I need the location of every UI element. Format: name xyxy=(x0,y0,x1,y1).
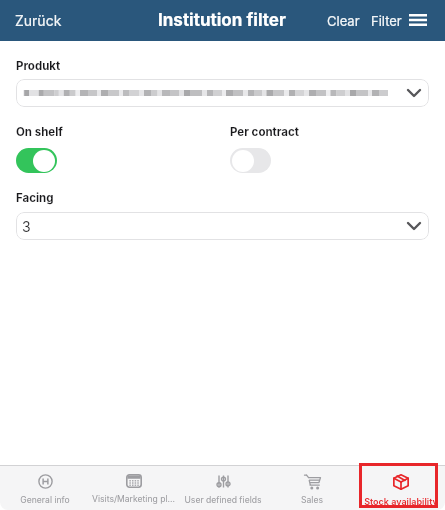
button[interactable]: Menu xyxy=(408,11,428,31)
button[interactable] xyxy=(16,79,429,107)
staticText: Facing xyxy=(16,191,54,205)
staticText: User defined fields xyxy=(184,495,262,505)
staticText: Visits/Marketing pl... xyxy=(92,494,175,504)
button[interactable]: Sales xyxy=(267,465,356,510)
staticText: 3 xyxy=(22,218,31,235)
button[interactable]: On xyxy=(16,148,57,173)
button[interactable]: Zurück xyxy=(0,4,74,37)
staticText: Produkt xyxy=(16,59,61,73)
staticText: On shelf xyxy=(16,125,63,139)
staticText: Per contract xyxy=(230,125,299,139)
staticText: Stock availability xyxy=(364,496,438,507)
button[interactable]: Stock availability xyxy=(356,465,445,510)
button[interactable]: Clear xyxy=(324,5,363,37)
staticText: Zurück xyxy=(15,12,62,29)
staticText: General info xyxy=(20,495,70,505)
button[interactable]: Off xyxy=(230,148,271,173)
staticText: Sales xyxy=(301,495,323,505)
staticText: Clear xyxy=(327,13,360,29)
button[interactable]: Filter xyxy=(368,5,405,37)
button[interactable]: General info xyxy=(0,465,89,510)
staticText: Institution filter xyxy=(158,10,286,31)
button[interactable]: 3 xyxy=(16,212,429,240)
button[interactable]: Visits/Marketing pl... xyxy=(89,465,178,510)
staticText: Filter xyxy=(371,13,402,29)
button[interactable]: User defined fields xyxy=(178,465,267,510)
